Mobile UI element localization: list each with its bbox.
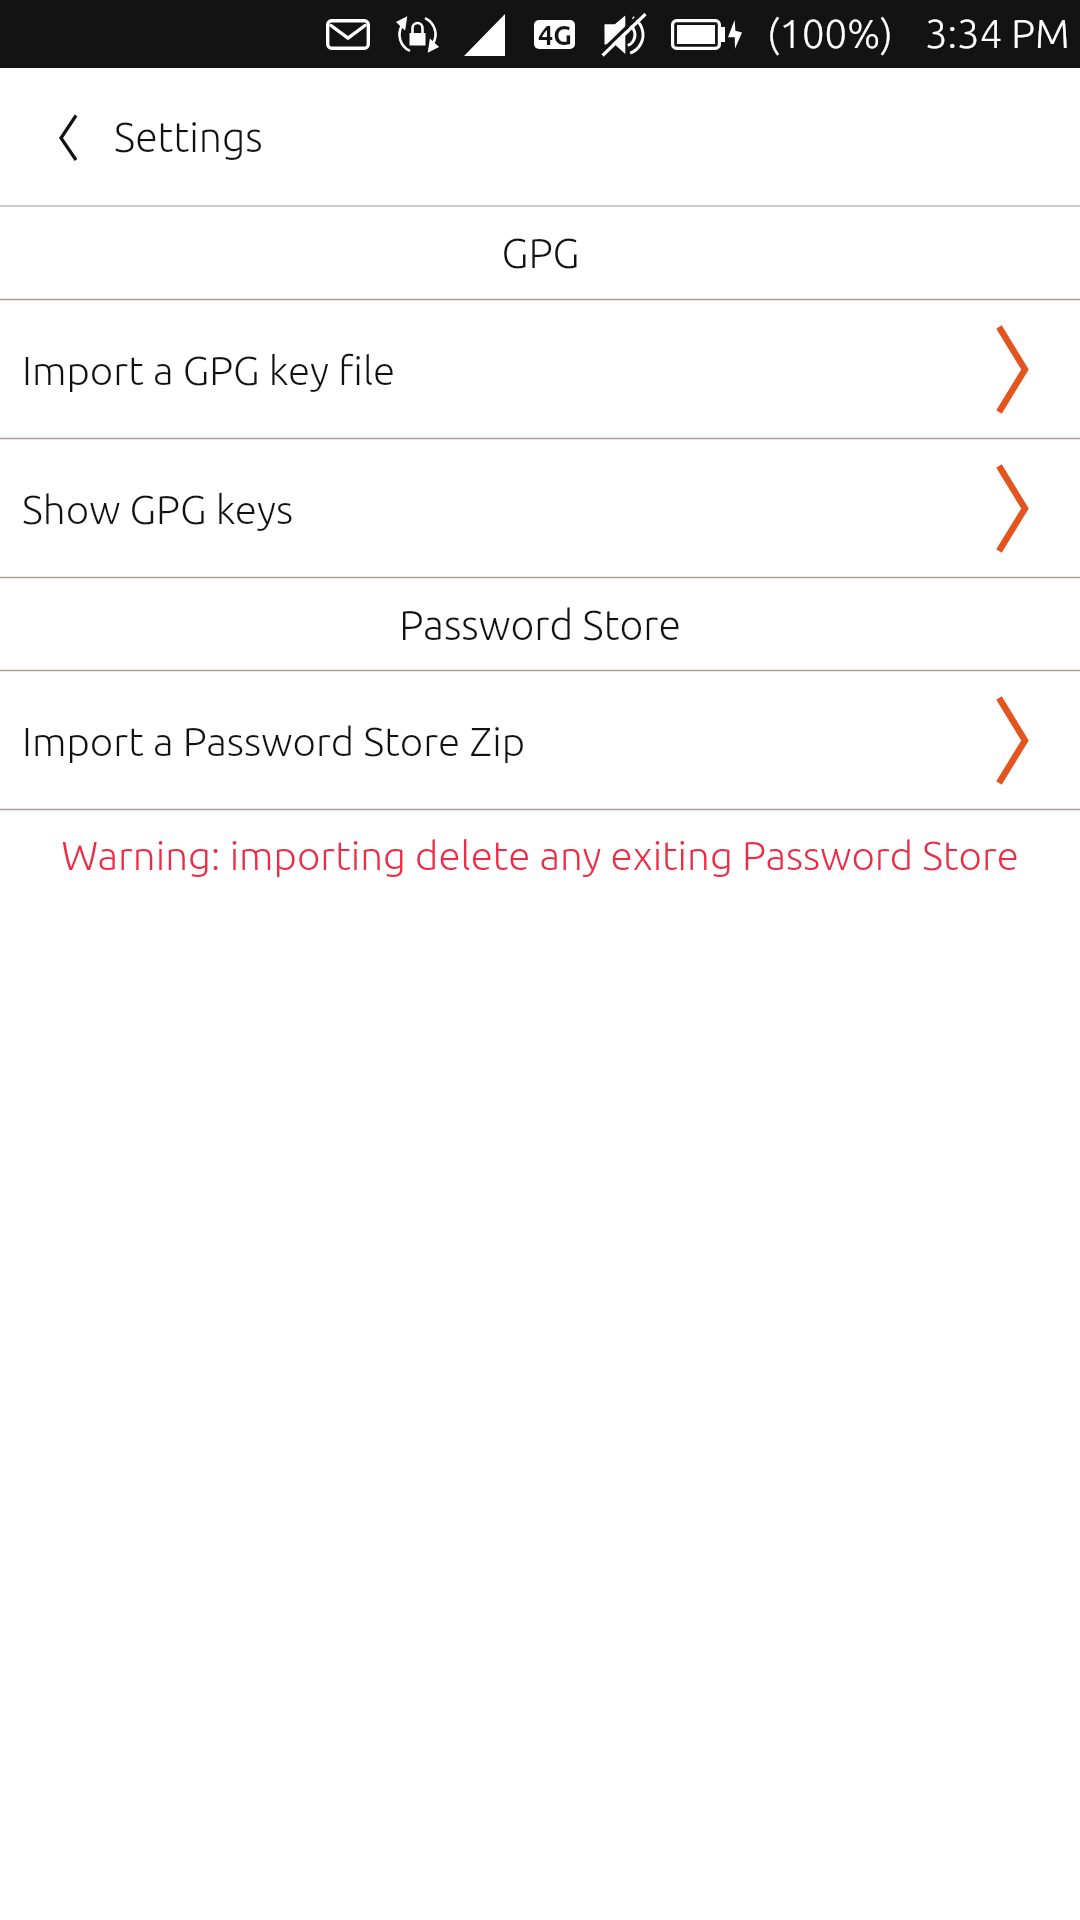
staticText: Import a Password Store Zip <box>22 718 526 763</box>
button[interactable]: Import a GPG key file <box>0 300 1080 439</box>
staticText: Import a GPG key file <box>22 347 396 392</box>
button[interactable]: Import a Password Store Zip <box>0 671 1080 810</box>
staticText: Show GPG keys <box>22 486 294 531</box>
staticText: GPG <box>501 230 580 276</box>
staticText: 4G <box>538 20 572 49</box>
staticText: 3:34 PM <box>925 11 1070 56</box>
staticText: (100%) <box>767 11 893 56</box>
button[interactable]: Show GPG keys <box>0 439 1080 578</box>
staticText: Settings <box>114 114 263 160</box>
staticText: Warning: importing delete any exiting Pa… <box>0 832 1080 877</box>
button[interactable]: Back <box>0 68 118 206</box>
staticText: Password Store <box>399 602 681 648</box>
